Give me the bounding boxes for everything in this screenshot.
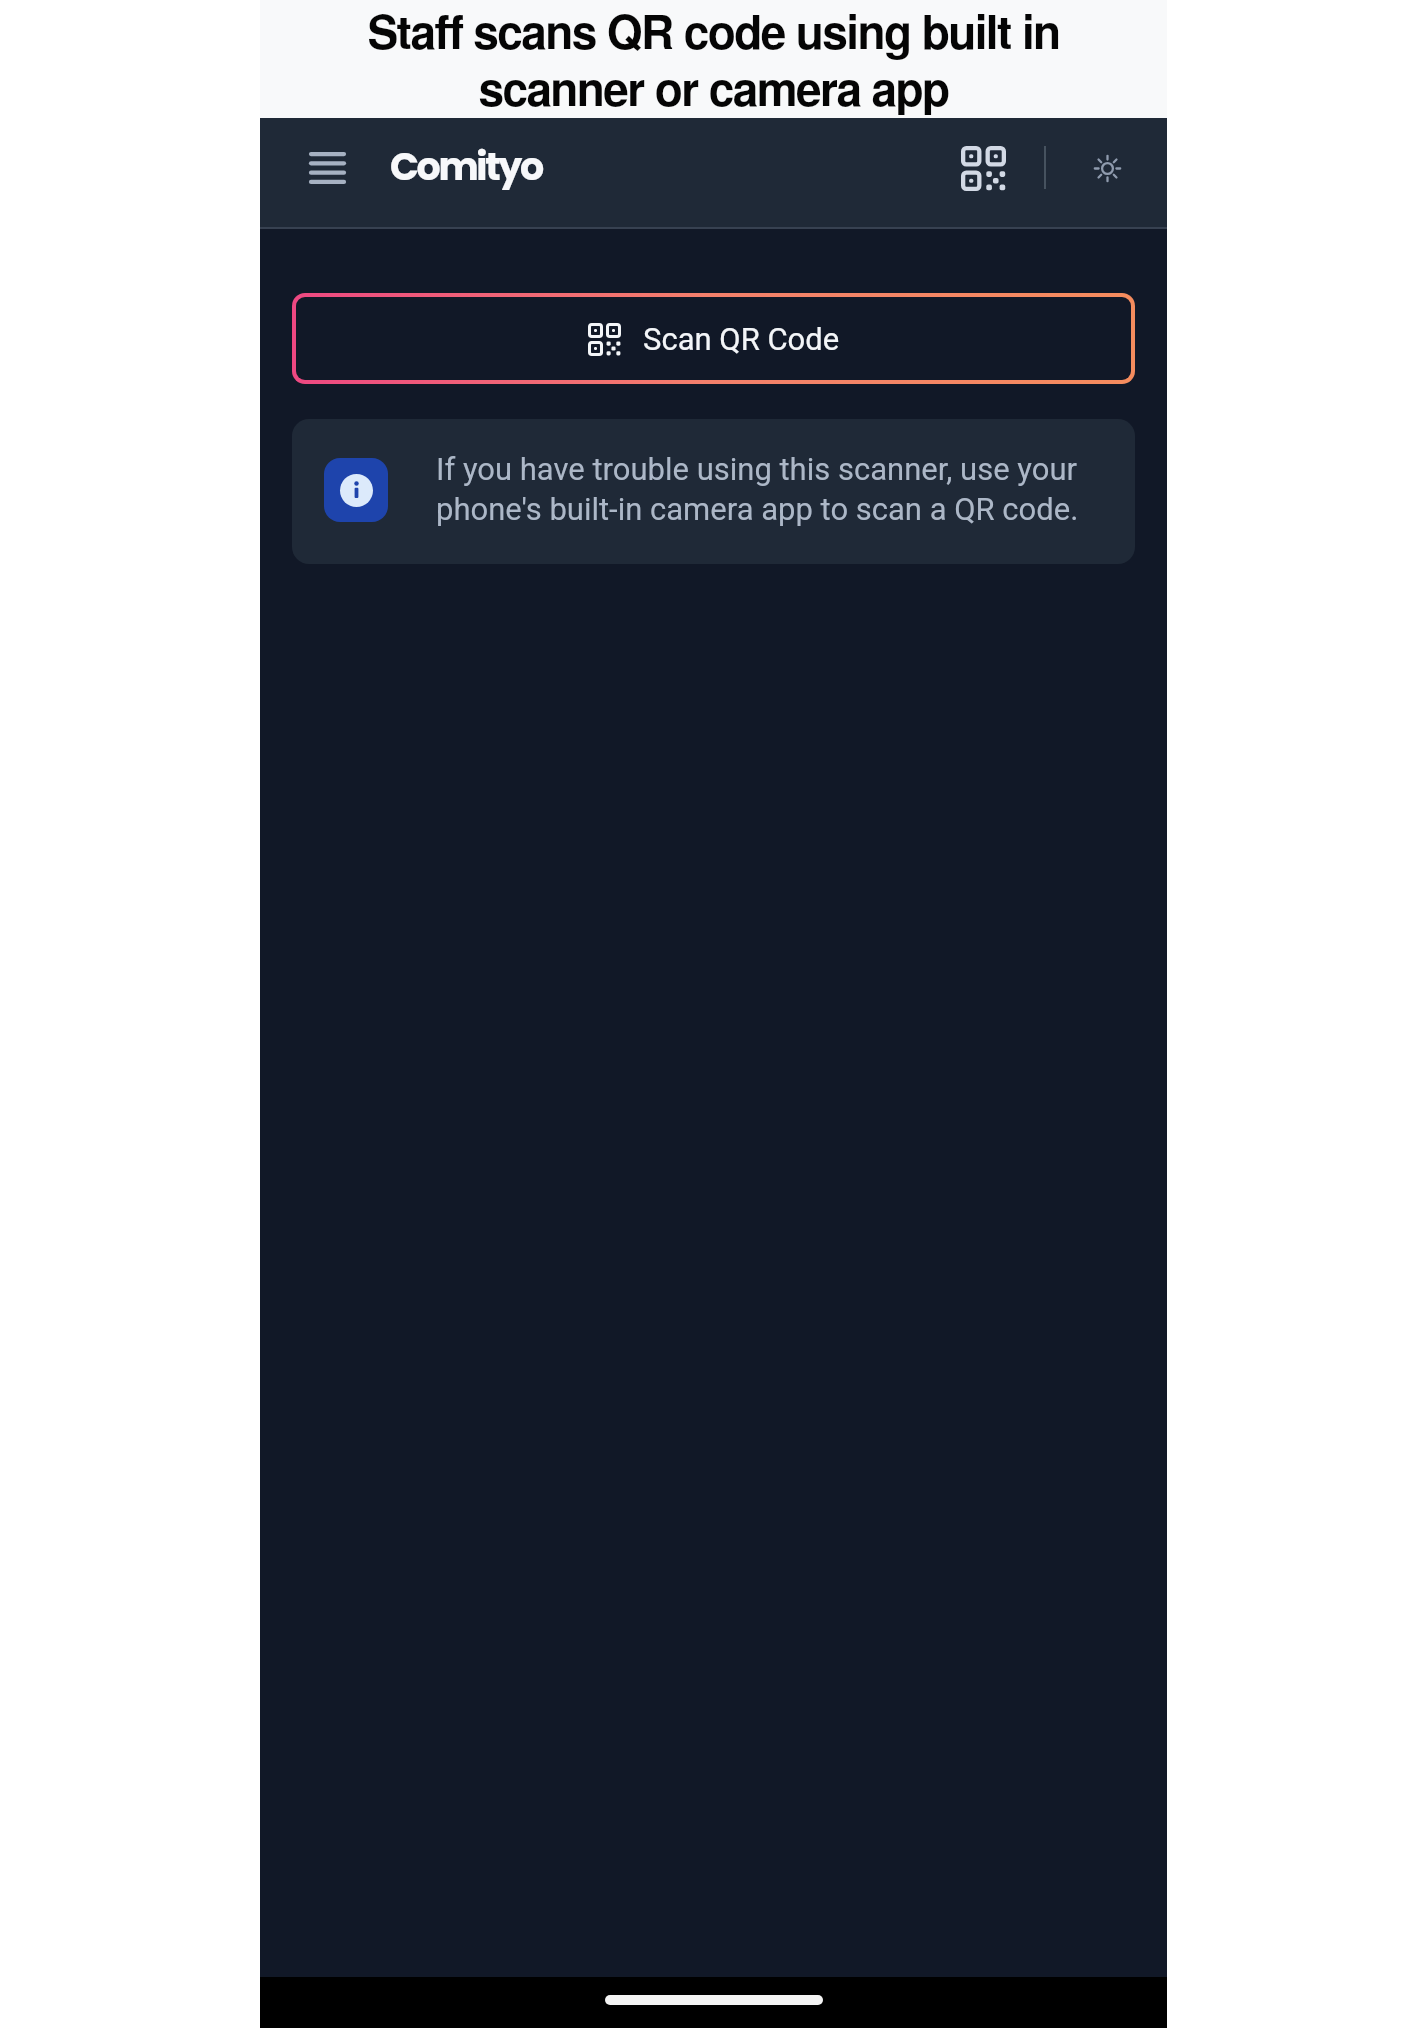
staticText: If you have trouble using this scanner, … [436, 451, 1111, 528]
button[interactable]: If you have trouble using this scanner, … [292, 419, 1135, 564]
staticText: Comityo [390, 140, 542, 193]
staticText: Scan QR Code [643, 321, 840, 357]
button[interactable]: Scan QR Code [296, 297, 1131, 380]
button[interactable]: Toggle light and dark theme [1082, 143, 1132, 193]
button[interactable]: Open navigation menu [297, 138, 357, 198]
staticText: Staff scans QR code using built in scann… [260, 0, 1167, 115]
button[interactable]: Scan QR code [950, 135, 1016, 201]
